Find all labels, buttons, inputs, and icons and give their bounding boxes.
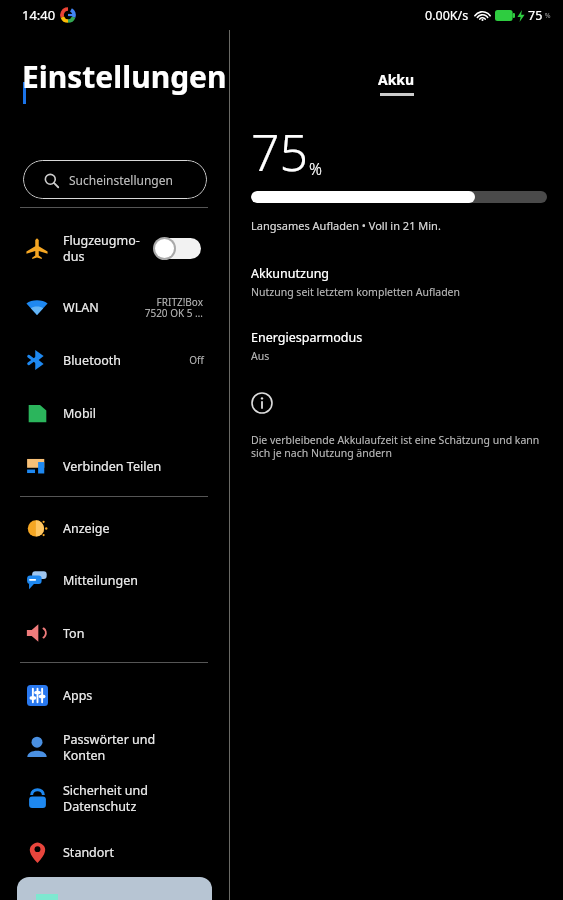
button[interactable]: WLAN [0,285,229,329]
staticText: FRITZ!Box 7520 OK 5 … [144,295,203,320]
staticText: Apps [63,687,93,704]
staticText: Mitteilungen [63,572,139,589]
staticText: Passwörter und Konten [63,731,175,763]
staticText: Mobil [63,405,97,422]
staticText: Flugzeugmo- dus [63,232,140,264]
staticText: % [309,158,322,180]
staticText: Ton [63,625,85,642]
button[interactable]: Sucheinstellungen [23,160,207,199]
staticText: Akku [378,70,415,89]
staticText: Sucheinstellungen [69,172,173,188]
button[interactable]: Akkunutzung [251,265,541,299]
button[interactable]: Anzeige [0,506,229,550]
staticText: Anzeige [63,520,110,537]
button[interactable]: Flugzeugmo- dus [0,226,229,270]
staticText: Einstellungen [22,56,227,97]
staticText: Akkunutzung [251,265,330,282]
button[interactable]: Sicherheit und Datenschutz [0,776,229,820]
button[interactable]: Mitteilungen [0,558,229,602]
staticText: Off [189,353,204,367]
button[interactable]: Mobil [0,391,229,435]
staticText: WLAN [63,299,99,316]
button[interactable]: Flugzeugmodus umschalten [153,235,201,261]
staticText: Langsames Aufladen • Voll in 21 Min. [251,218,441,233]
button[interactable]: Energiesparmodus [251,329,541,363]
button[interactable]: Standort [0,830,229,874]
staticText: Verbinden Teilen [63,458,162,475]
button[interactable]: Verbinden Teilen [0,444,229,488]
button[interactable]: Ton [0,611,229,655]
other: Information [251,392,273,414]
staticText: 14:40 [22,6,56,24]
staticText: Energiesparmodus [251,329,363,346]
button[interactable]: Passwörter und Konten [0,725,229,769]
staticText: Aus [251,349,270,363]
staticText: Bluetooth [63,352,122,369]
button[interactable] [17,877,212,900]
staticText: Die verbleibende Akkulaufzeit ist eine S… [251,433,551,460]
staticText: Nutzung seit letztem kompletten Aufladen [251,285,461,299]
button[interactable]: Apps [0,673,229,717]
staticText: 75 [528,7,543,24]
staticText: Sicherheit und Datenschutz [63,782,148,814]
staticText: 75 [251,118,309,186]
staticText: Standort [63,844,115,861]
staticText: 0.00K/s [425,7,469,24]
staticText: % [543,11,551,21]
button[interactable]: Bluetooth [0,338,229,382]
